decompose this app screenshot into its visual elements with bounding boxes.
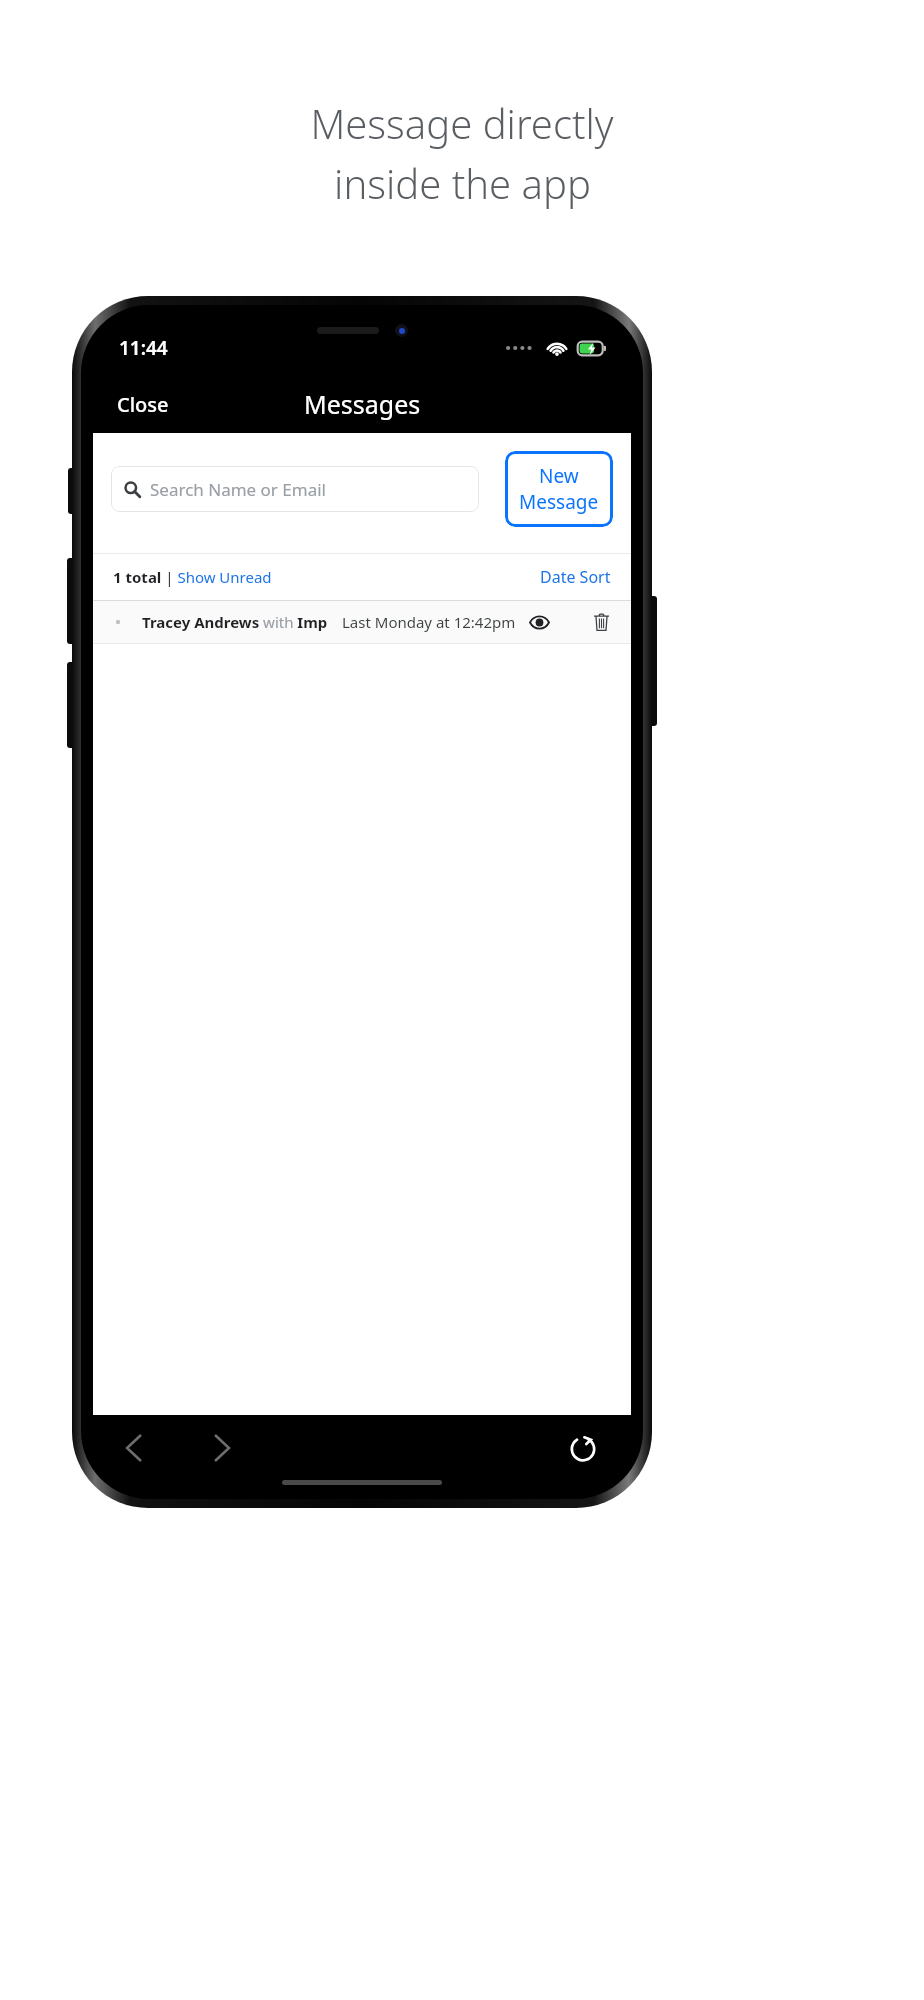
staticText: Message directly [310,96,614,150]
button[interactable]: New [505,451,613,527]
staticText: Search Name or Email [150,478,326,501]
button[interactable]: Search Name or Email [111,466,479,512]
button[interactable]: 1 total | Show Unread [113,567,272,587]
staticText: New [539,463,579,489]
button[interactable]: Reload [561,1426,605,1470]
button[interactable]: Close [93,381,193,428]
staticText: inside the app [334,156,591,210]
button[interactable]: Back [115,1423,153,1473]
staticText: Date Sort [540,566,611,588]
staticText: 1 total | Show Unread [113,567,272,587]
button[interactable]: Date Sort [540,566,611,588]
button[interactable]: Mark as read [528,614,551,631]
staticText: Message [519,489,599,515]
staticText: Last Monday at 12:42pm [342,612,516,632]
button[interactable]: Delete [592,611,611,633]
staticText: Tracey Andrews with Imp [142,612,328,632]
button[interactable]: Forward [203,1423,241,1473]
staticText: Messages [304,387,421,421]
staticText: Close [117,391,169,418]
button[interactable]: Tracey Andrews with Imp [93,601,631,643]
staticText: 11:44 [119,335,168,361]
